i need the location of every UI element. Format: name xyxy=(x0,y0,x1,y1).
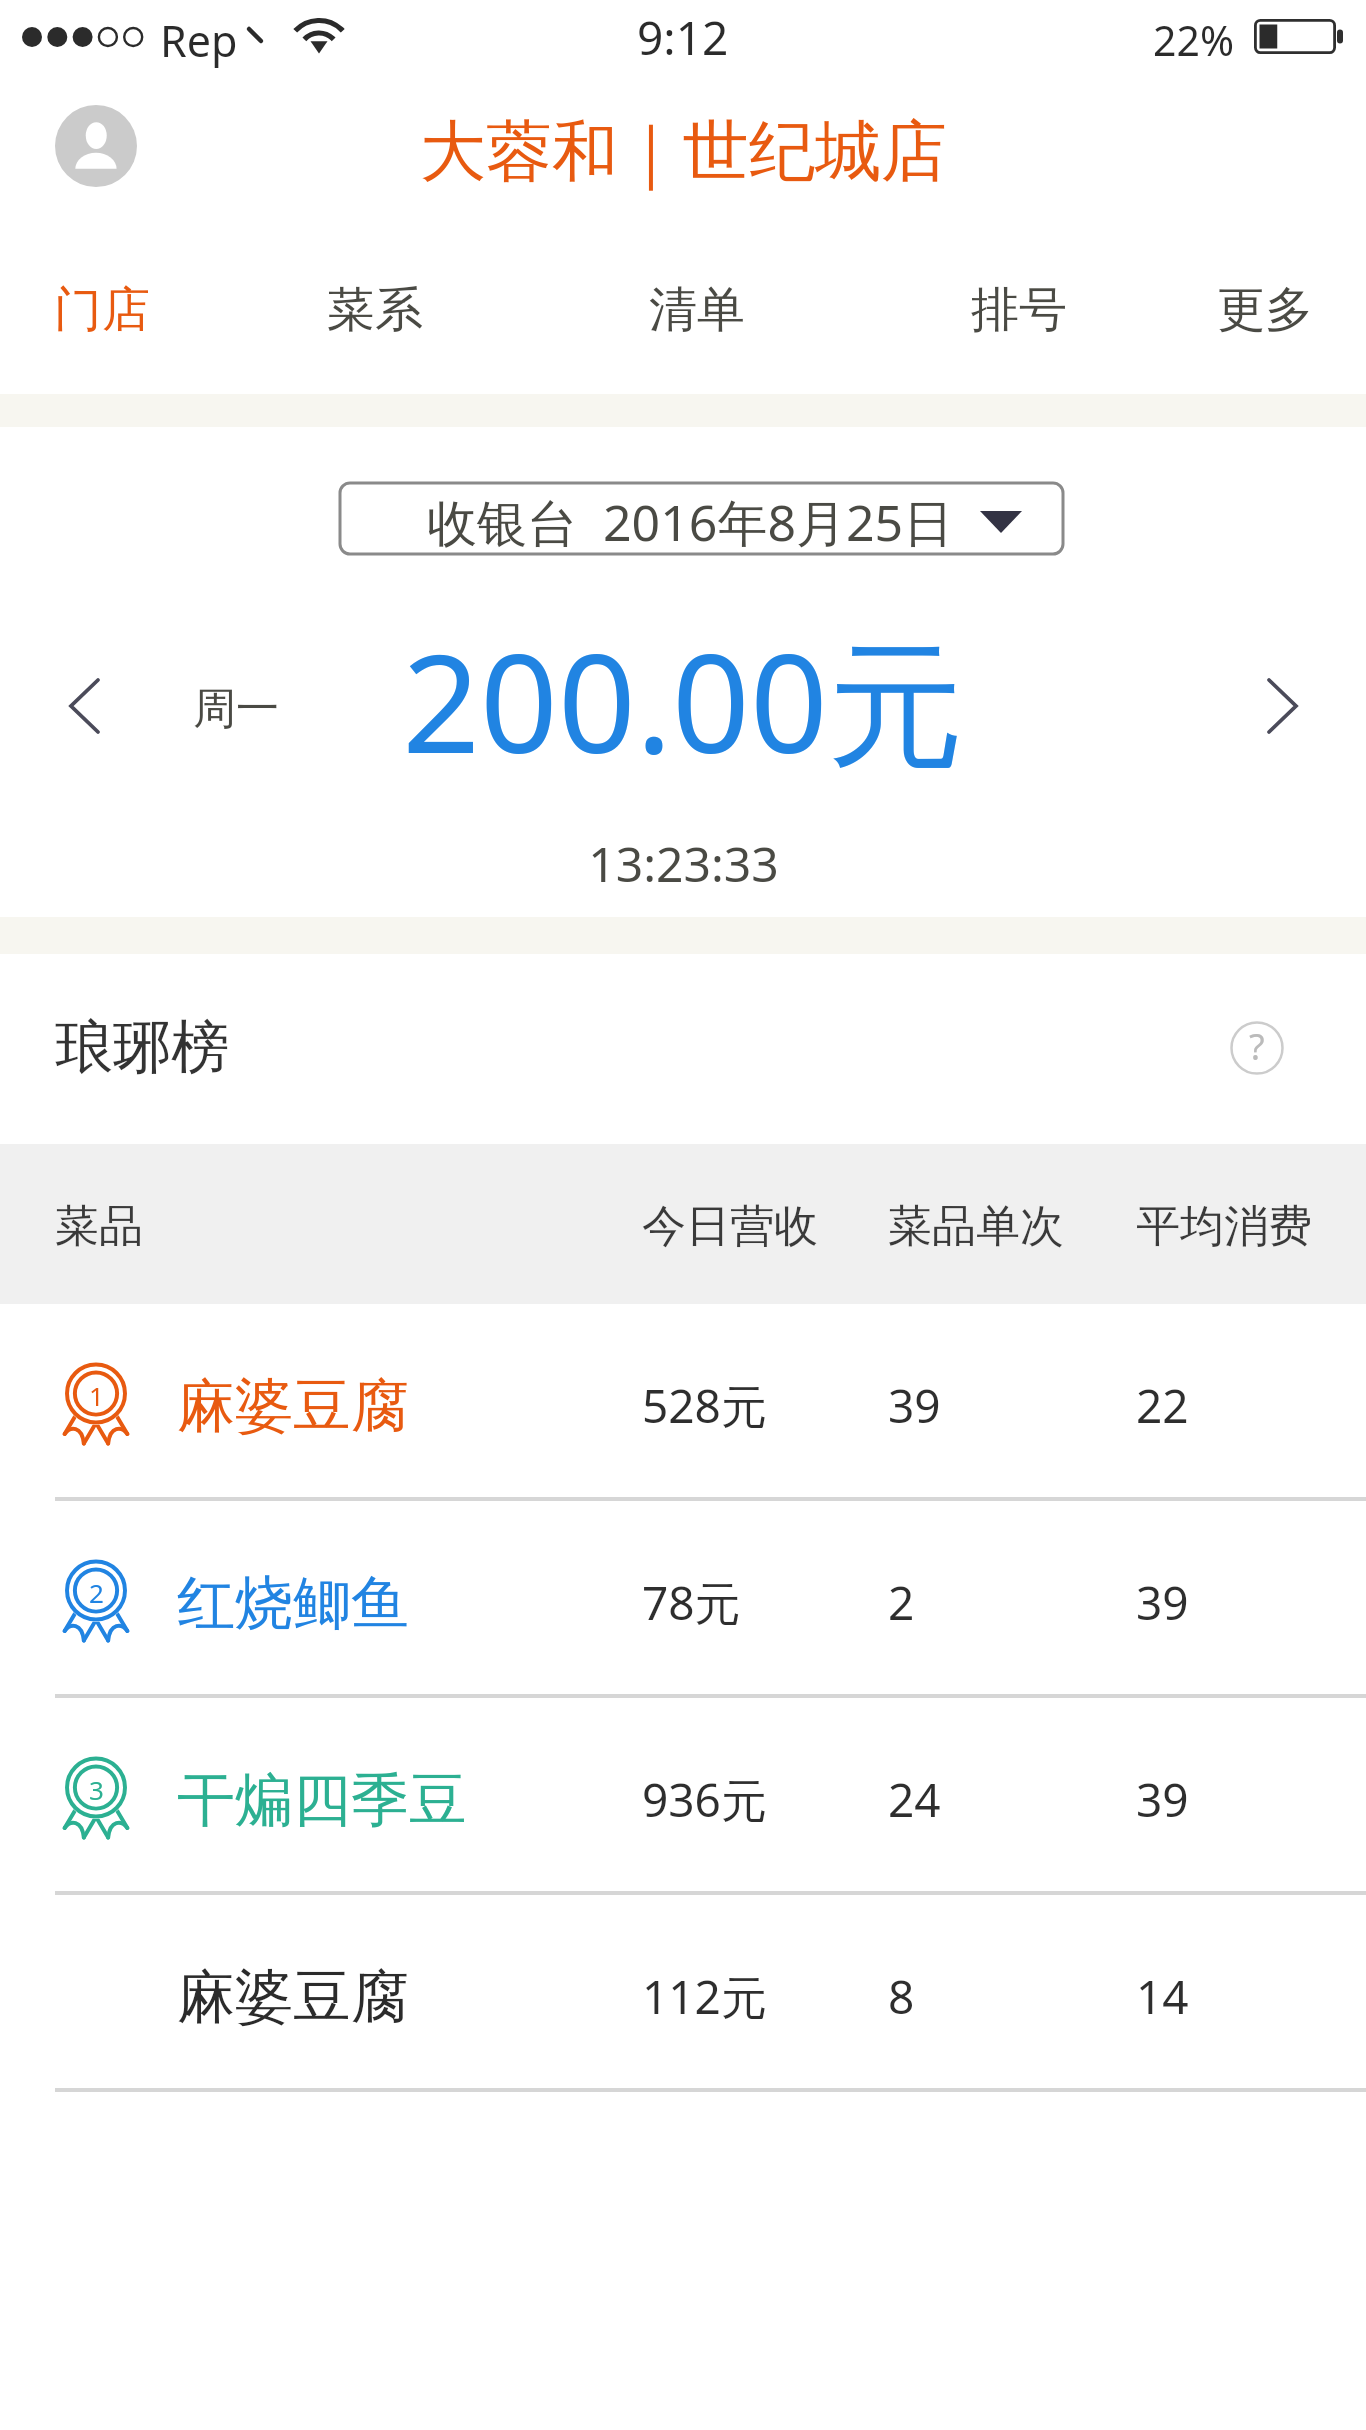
staticText: ? xyxy=(1249,1022,1265,1071)
button[interactable]: 清单 xyxy=(617,250,777,370)
staticText: 麻婆豆腐 xyxy=(177,1370,409,1443)
staticText: 周一 xyxy=(193,682,279,736)
staticText: 排号 xyxy=(971,280,1067,340)
button[interactable]: Help xyxy=(1230,1021,1284,1075)
staticText: 清单 xyxy=(649,280,745,340)
staticText: 936元 xyxy=(642,1768,767,1831)
staticText: 1 xyxy=(89,1378,104,1413)
staticText: 更多 xyxy=(1217,280,1313,340)
staticText: 今日营收 xyxy=(642,1199,818,1254)
button[interactable]: Account xyxy=(55,105,137,187)
staticText: 干煸四季豆 xyxy=(177,1764,467,1837)
staticText: 78元 xyxy=(642,1571,741,1634)
staticText: 收银台 2016年8月25日 xyxy=(427,488,954,556)
staticText: 2 xyxy=(888,1571,915,1634)
staticText: 39 xyxy=(1136,1768,1189,1831)
staticText: 22% xyxy=(1153,12,1234,68)
button[interactable]: 菜系 xyxy=(295,250,455,370)
staticText: 3 xyxy=(89,1772,104,1807)
button[interactable]: 门店 xyxy=(22,250,182,370)
button[interactable]: 1 xyxy=(0,1304,1366,1497)
button[interactable]: 2 xyxy=(0,1501,1366,1694)
staticText: 39 xyxy=(888,1374,941,1437)
staticText: 平均消费 xyxy=(1136,1199,1312,1254)
staticText: 琅琊榜 xyxy=(55,1011,229,1084)
staticText: 菜品单次 xyxy=(888,1199,1064,1254)
staticText: 菜品 xyxy=(55,1199,143,1254)
button[interactable]: 更多 xyxy=(1185,250,1345,370)
staticText: 大蓉和｜世纪城店 xyxy=(420,110,947,193)
button[interactable]: 麻婆豆腐 xyxy=(0,1895,1366,2088)
staticText: 8 xyxy=(888,1965,915,2028)
staticText: 112元 xyxy=(642,1965,767,2028)
staticText: 门店 xyxy=(54,280,150,340)
button[interactable]: Previous day xyxy=(40,650,130,760)
staticText: 22 xyxy=(1136,1374,1189,1437)
staticText: 红烧鲫鱼 xyxy=(177,1567,409,1640)
button[interactable]: Select date xyxy=(340,483,1063,554)
button[interactable]: Next day xyxy=(1240,650,1330,760)
staticText: 39 xyxy=(1136,1571,1189,1634)
staticText: 2 xyxy=(89,1575,104,1610)
staticText: 9:12 xyxy=(637,6,729,69)
staticText: 麻婆豆腐 xyxy=(177,1961,409,2034)
staticText: Rep xyxy=(160,11,238,70)
staticText: 200.00元 xyxy=(402,608,964,794)
button[interactable]: 排号 xyxy=(939,250,1099,370)
button[interactable]: 3 xyxy=(0,1698,1366,1891)
staticText: 13:23:33 xyxy=(588,831,779,896)
staticText: 24 xyxy=(888,1768,941,1831)
staticText: 528元 xyxy=(642,1374,767,1437)
staticText: 菜系 xyxy=(327,280,423,340)
staticText: 14 xyxy=(1136,1965,1189,2028)
